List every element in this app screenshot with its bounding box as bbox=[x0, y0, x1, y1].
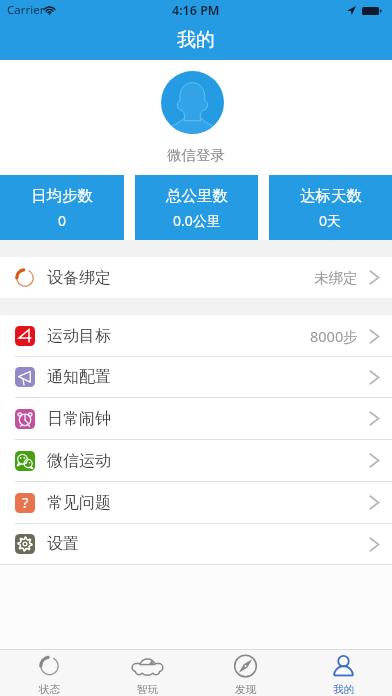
staticText: 我的 bbox=[177, 28, 215, 52]
button[interactable]: 通知配置 bbox=[0, 357, 392, 397]
button[interactable]: 设备绑定 bbox=[0, 257, 392, 298]
button[interactable]: 日常闹钟 bbox=[0, 398, 392, 439]
staticText: 微信登录 bbox=[167, 146, 225, 164]
staticText: 8000步 bbox=[310, 326, 358, 346]
staticText: 通知配置 bbox=[47, 367, 111, 387]
staticText: 达标天数 bbox=[300, 186, 362, 206]
staticText: 微信运动 bbox=[47, 451, 111, 471]
staticText: 设备绑定 bbox=[47, 268, 111, 288]
staticText: 状态 bbox=[39, 683, 60, 696]
button[interactable]: 日均步数 bbox=[0, 175, 124, 240]
staticText: 发现 bbox=[235, 683, 256, 696]
staticText: 0.0公里 bbox=[173, 211, 221, 230]
button[interactable]: 达标天数 bbox=[269, 175, 392, 240]
staticText: 我的 bbox=[333, 683, 354, 696]
staticText: 总公里数 bbox=[166, 186, 228, 206]
button[interactable]: 微信登录头像 bbox=[161, 71, 224, 134]
staticText: 智玩 bbox=[137, 683, 158, 696]
staticText: ? bbox=[22, 493, 29, 512]
staticText: 常见问题 bbox=[47, 493, 111, 513]
button[interactable]: 状态 bbox=[0, 649, 98, 696]
button[interactable]: 运动目标 bbox=[0, 316, 392, 356]
button[interactable]: 总公里数 bbox=[135, 175, 258, 240]
button[interactable]: ? bbox=[0, 482, 392, 523]
staticText: 4:16 PM bbox=[172, 2, 220, 19]
staticText: 设置 bbox=[47, 534, 79, 554]
staticText: 日常闹钟 bbox=[47, 409, 111, 429]
staticText: 运动目标 bbox=[47, 326, 111, 346]
staticText: 0 bbox=[58, 211, 67, 230]
button[interactable]: 设置 bbox=[0, 524, 392, 564]
staticText: Carrier bbox=[7, 2, 45, 18]
button[interactable]: 智玩 bbox=[98, 649, 196, 696]
staticText: 日均步数 bbox=[31, 186, 93, 206]
staticText: 未绑定 bbox=[314, 269, 358, 287]
button[interactable]: 微信运动 bbox=[0, 440, 392, 481]
staticText: 0天 bbox=[319, 211, 342, 230]
button[interactable]: 我的 bbox=[294, 649, 392, 696]
button[interactable]: 发现 bbox=[196, 649, 294, 696]
